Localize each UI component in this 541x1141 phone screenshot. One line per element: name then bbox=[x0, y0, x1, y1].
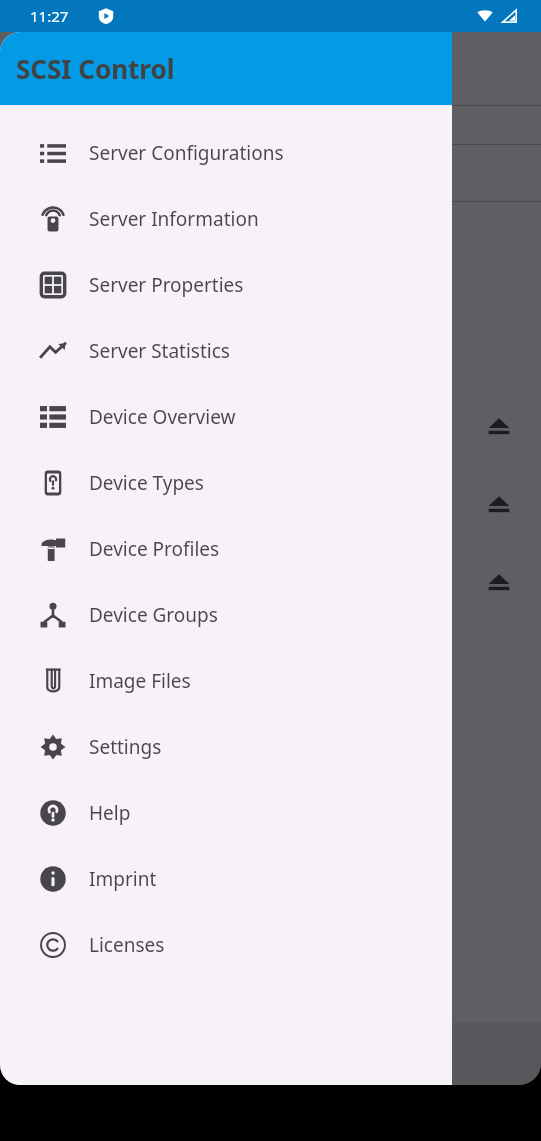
button[interactable]: Device Profiles bbox=[0, 516, 452, 582]
staticText: Help bbox=[89, 800, 131, 826]
staticText: Device Groups bbox=[89, 602, 218, 628]
button[interactable]: Eject bbox=[475, 402, 523, 450]
button[interactable]: Device Groups bbox=[0, 582, 452, 648]
button[interactable]: Server Properties bbox=[0, 252, 452, 318]
button[interactable]: Eject bbox=[475, 558, 523, 606]
button[interactable]: Help bbox=[0, 780, 452, 846]
staticText: Device Overview bbox=[89, 404, 236, 430]
staticText: SCSI Control bbox=[16, 51, 175, 86]
staticText: Server Configurations bbox=[89, 140, 284, 166]
button[interactable]: Server Configurations bbox=[0, 120, 452, 186]
staticText: Licenses bbox=[89, 932, 165, 958]
staticText: Settings bbox=[89, 734, 162, 760]
staticText: Image Files bbox=[89, 668, 191, 694]
staticText: Device Profiles bbox=[89, 536, 220, 562]
button[interactable]: Server Information bbox=[0, 186, 452, 252]
staticText: 11:27 bbox=[30, 6, 69, 26]
staticText: Device Types bbox=[89, 470, 204, 496]
button[interactable]: Device Types bbox=[0, 450, 452, 516]
button[interactable]: Imprint bbox=[0, 846, 452, 912]
button[interactable]: Image Files bbox=[0, 648, 452, 714]
staticText: Server Information bbox=[89, 206, 259, 232]
button[interactable]: Device Overview bbox=[0, 384, 452, 450]
staticText: Server Properties bbox=[89, 272, 244, 298]
button[interactable]: Licenses bbox=[0, 912, 452, 978]
button[interactable]: Eject bbox=[475, 480, 523, 528]
staticText: Server Statistics bbox=[89, 338, 230, 364]
staticText: Imprint bbox=[89, 866, 157, 892]
button[interactable]: Settings bbox=[0, 714, 452, 780]
button[interactable]: Server Statistics bbox=[0, 318, 452, 384]
